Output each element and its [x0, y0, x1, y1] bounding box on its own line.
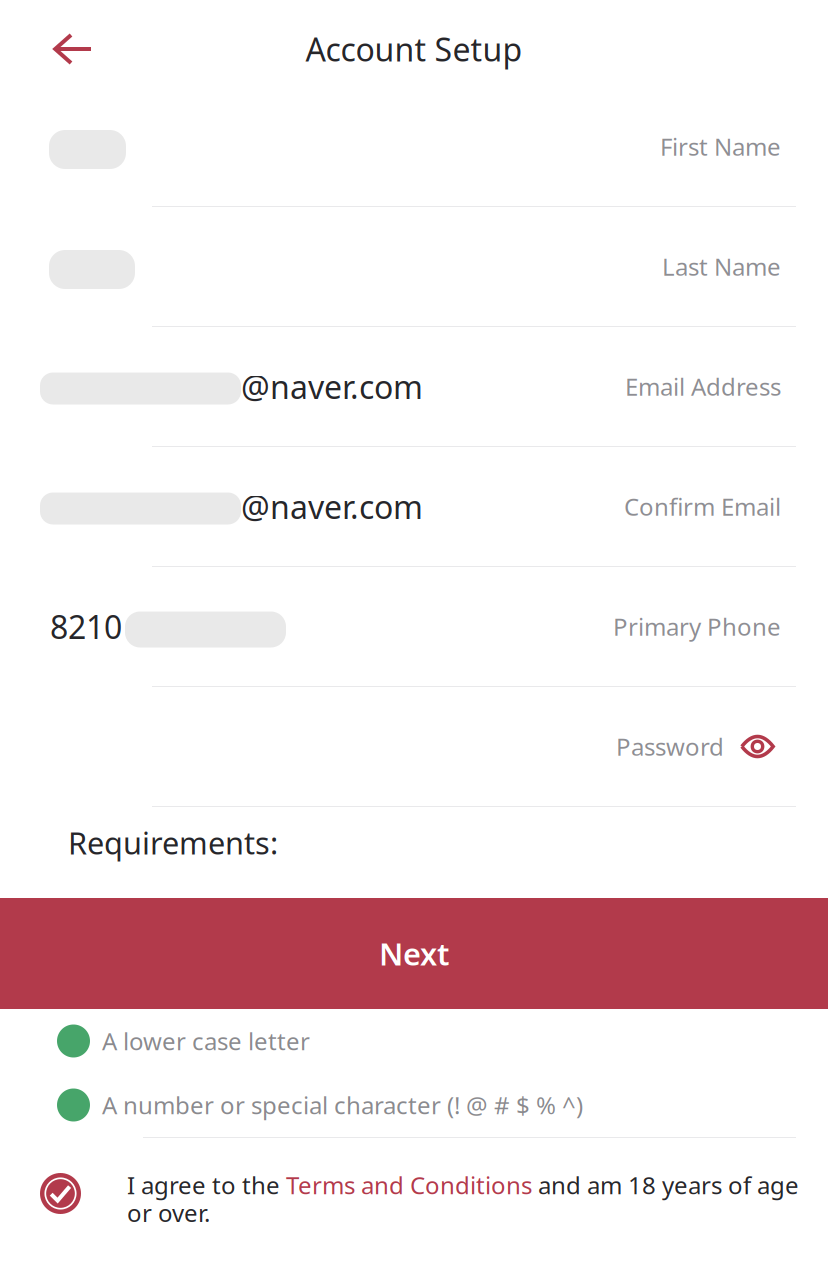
staticText: First Name [660, 131, 781, 162]
button[interactable]: Next [0, 898, 828, 1009]
staticText: Last Name [662, 251, 781, 282]
button[interactable]: Back [0, 19, 115, 79]
button[interactable]: Agree to terms and conditions [40, 1169, 81, 1214]
staticText: A lower case letter [102, 1025, 310, 1057]
staticText: Next [379, 933, 449, 974]
button[interactable]: Show password [724, 715, 781, 777]
staticText: Password [616, 731, 724, 762]
staticText: A number or special character (! @ # $ %… [102, 1089, 583, 1121]
staticText: Requirements: [68, 822, 278, 863]
staticText: @naver.com [241, 485, 423, 528]
staticText: I agree to the Terms and Conditions and … [127, 1169, 799, 1229]
staticText: Confirm Email [624, 491, 781, 522]
staticText: Primary Phone [613, 611, 781, 642]
staticText: Email Address [625, 371, 781, 402]
staticText: @naver.com [241, 365, 423, 408]
staticText: 8210 [50, 605, 122, 648]
staticText: Account Setup [305, 28, 522, 70]
